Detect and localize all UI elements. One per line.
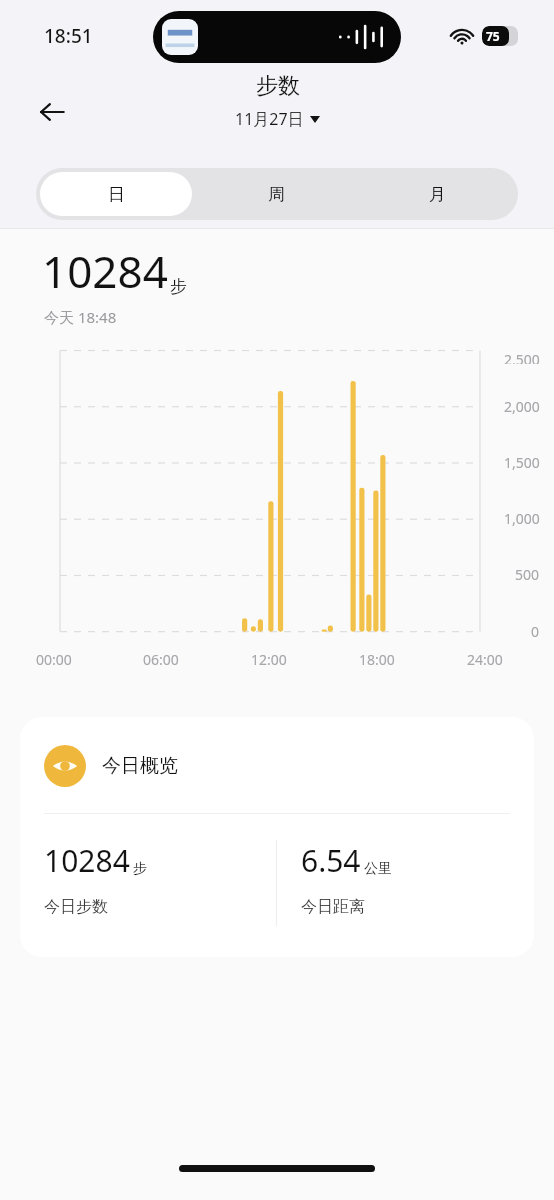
staticText: 06:00 xyxy=(143,650,179,669)
staticText: 今日步数 xyxy=(44,897,108,917)
button[interactable]: 周 xyxy=(200,172,353,216)
button[interactable]: 月 xyxy=(361,172,514,216)
staticText: 步数 xyxy=(256,72,300,100)
staticText: 1,500 xyxy=(504,453,540,472)
staticText: 2,500 xyxy=(504,350,540,364)
staticText: 24:00 xyxy=(467,650,503,669)
staticText: 月 xyxy=(429,184,446,205)
staticText: 周 xyxy=(268,184,285,205)
staticText: 6.54 xyxy=(301,840,361,881)
staticText: 今日概览 xyxy=(102,754,178,778)
staticText: 12:00 xyxy=(251,650,287,669)
staticText: 75 xyxy=(486,28,500,44)
staticText: 0 xyxy=(531,622,540,641)
staticText: 今日距离 xyxy=(301,897,365,917)
staticText: 日 xyxy=(108,184,125,205)
staticText: 500 xyxy=(515,565,540,584)
button[interactable]: 日 xyxy=(40,172,192,216)
staticText: 步 xyxy=(133,860,147,878)
button[interactable]: 11月27日 xyxy=(231,106,324,132)
staticText: 11月27日 xyxy=(235,108,304,130)
staticText: 步 xyxy=(170,276,187,297)
staticText: 10284 xyxy=(42,241,168,301)
button[interactable]: 今日概览 xyxy=(20,717,534,957)
staticText: 公里 xyxy=(364,860,392,878)
staticText: 1,000 xyxy=(504,509,540,528)
staticText: 2,000 xyxy=(504,397,540,416)
button[interactable]: Back xyxy=(26,86,78,138)
staticText: 10284 xyxy=(44,840,130,881)
staticText: 00:00 xyxy=(36,650,72,669)
staticText: 18:51 xyxy=(44,23,93,49)
staticText: 18:00 xyxy=(359,650,395,669)
staticText: 今天 18:48 xyxy=(44,307,117,327)
